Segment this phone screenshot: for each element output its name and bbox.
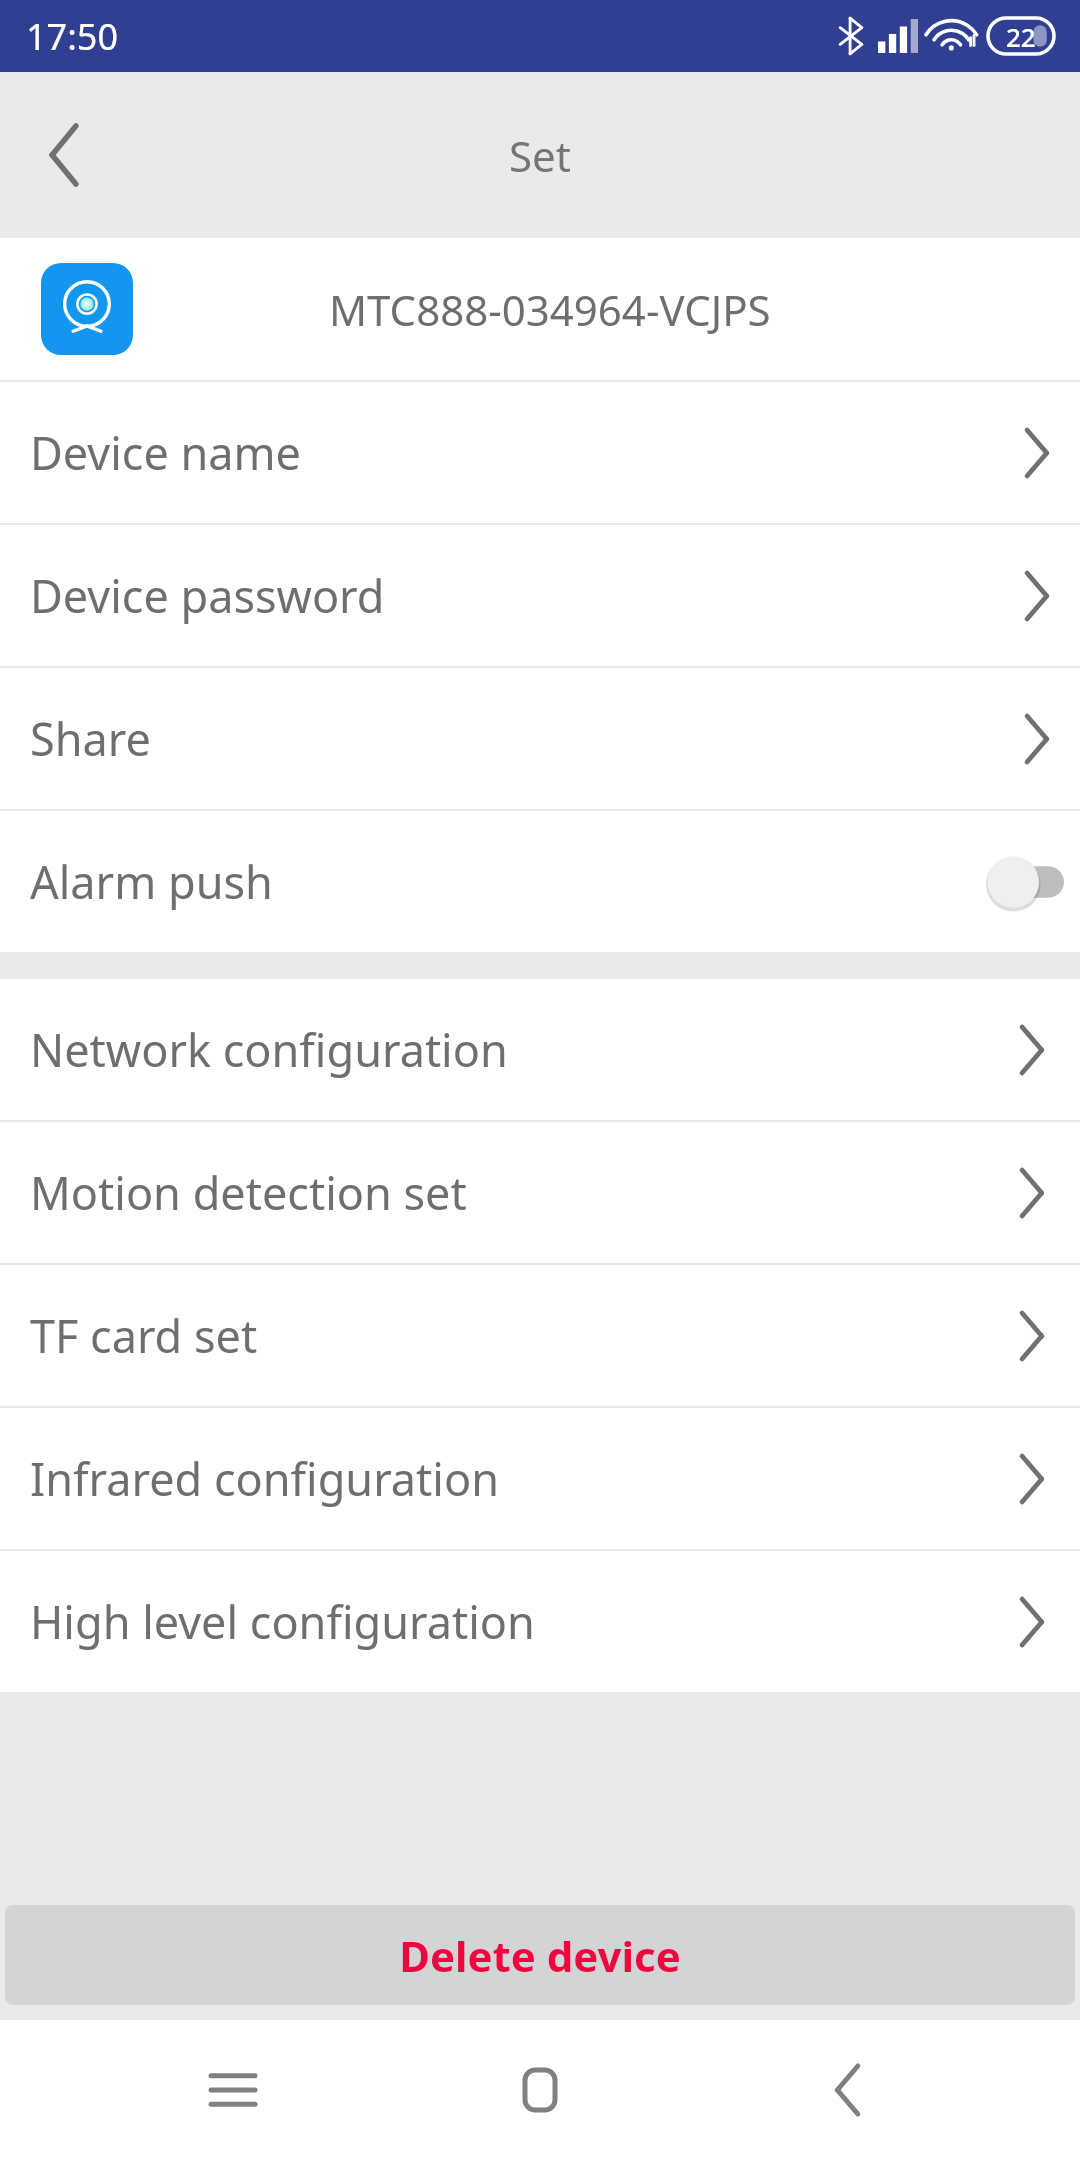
staticText: High level configuration	[30, 1591, 535, 1652]
staticText: 22	[1006, 19, 1036, 54]
staticText: MTC888-034964-VCJPS	[329, 281, 771, 338]
staticText: TF card set	[30, 1305, 258, 1366]
button[interactable]: Home	[465, 2020, 615, 2160]
staticText: Share	[30, 708, 151, 769]
staticText: Device password	[30, 565, 385, 626]
button[interactable]: Back	[773, 2020, 923, 2160]
button[interactable]: Share	[0, 668, 1080, 809]
staticText: Motion detection set	[30, 1162, 467, 1223]
button[interactable]: Alarm push	[0, 811, 1080, 952]
staticText: Network configuration	[30, 1019, 508, 1080]
button[interactable]: Device password	[0, 525, 1080, 666]
button[interactable]: Recent apps	[158, 2020, 308, 2160]
button[interactable]: MTC888-034964-VCJPS	[0, 238, 1080, 380]
staticText: Infrared configuration	[30, 1448, 499, 1509]
button[interactable]: Motion detection set	[0, 1122, 1080, 1263]
button[interactable]: High level configuration	[0, 1551, 1080, 1692]
button[interactable]: TF card set	[0, 1265, 1080, 1406]
button[interactable]: Back	[0, 90, 130, 220]
staticText: Device name	[30, 422, 301, 483]
button[interactable]: Infrared configuration	[0, 1408, 1080, 1549]
button[interactable]: Network configuration	[0, 979, 1080, 1120]
staticText: Alarm push	[30, 851, 273, 912]
button[interactable]: Delete device	[5, 1905, 1075, 2005]
staticText: 17:50	[26, 12, 119, 61]
button[interactable]: Device name	[0, 382, 1080, 523]
staticText: Set	[509, 127, 571, 184]
staticText: Delete device	[399, 1927, 681, 1984]
